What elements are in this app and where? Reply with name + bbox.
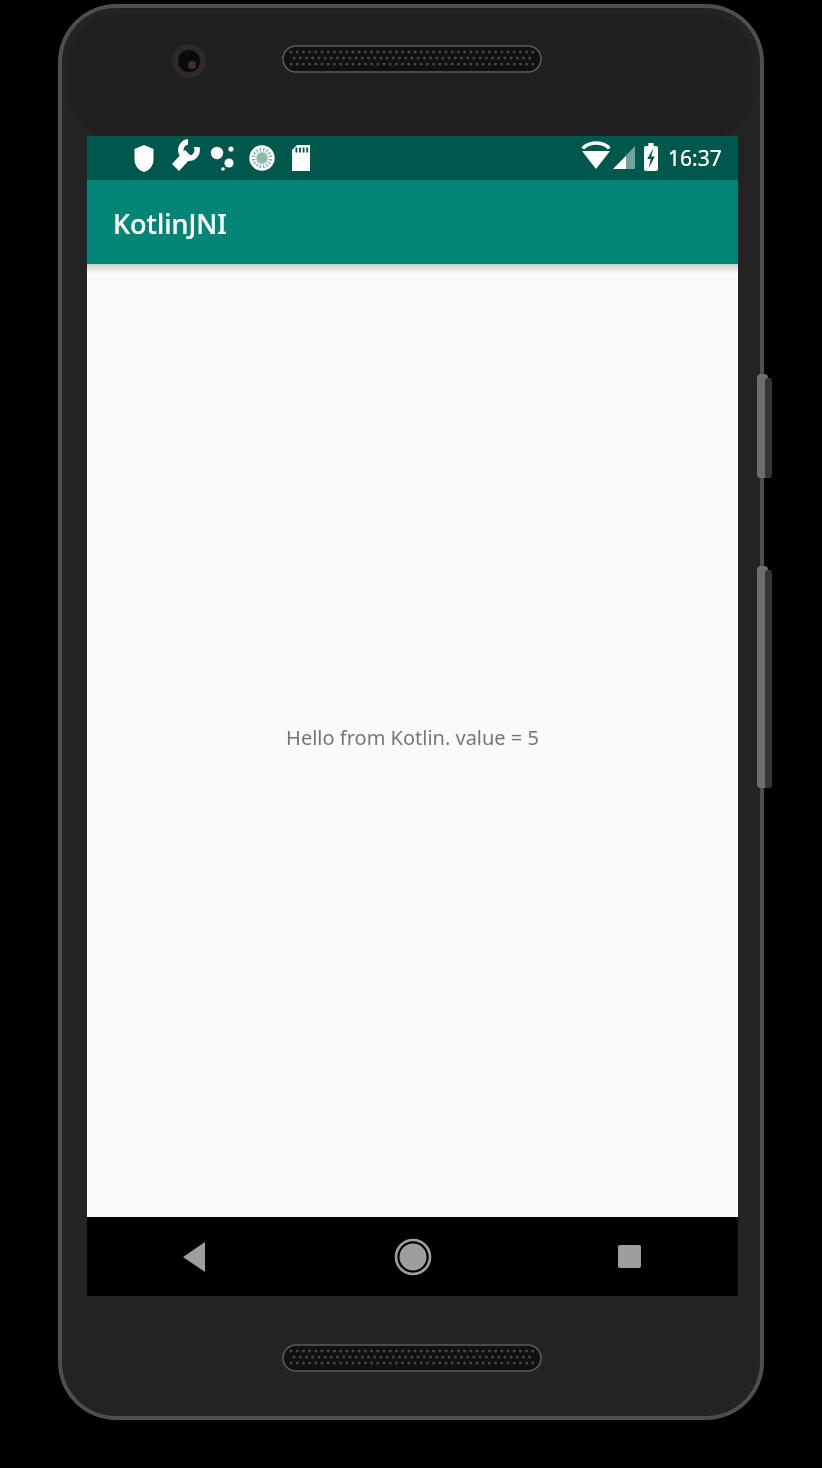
staticText: 16:37 bbox=[668, 144, 722, 173]
button[interactable]: Back bbox=[87, 1217, 304, 1296]
button[interactable]: Recent apps bbox=[521, 1217, 738, 1296]
button[interactable]: KotlinJNI bbox=[87, 180, 738, 264]
button[interactable]: Home bbox=[304, 1217, 521, 1296]
staticText: KotlinJNI bbox=[113, 205, 227, 242]
staticText: Hello from Kotlin. value = 5 bbox=[286, 724, 539, 751]
